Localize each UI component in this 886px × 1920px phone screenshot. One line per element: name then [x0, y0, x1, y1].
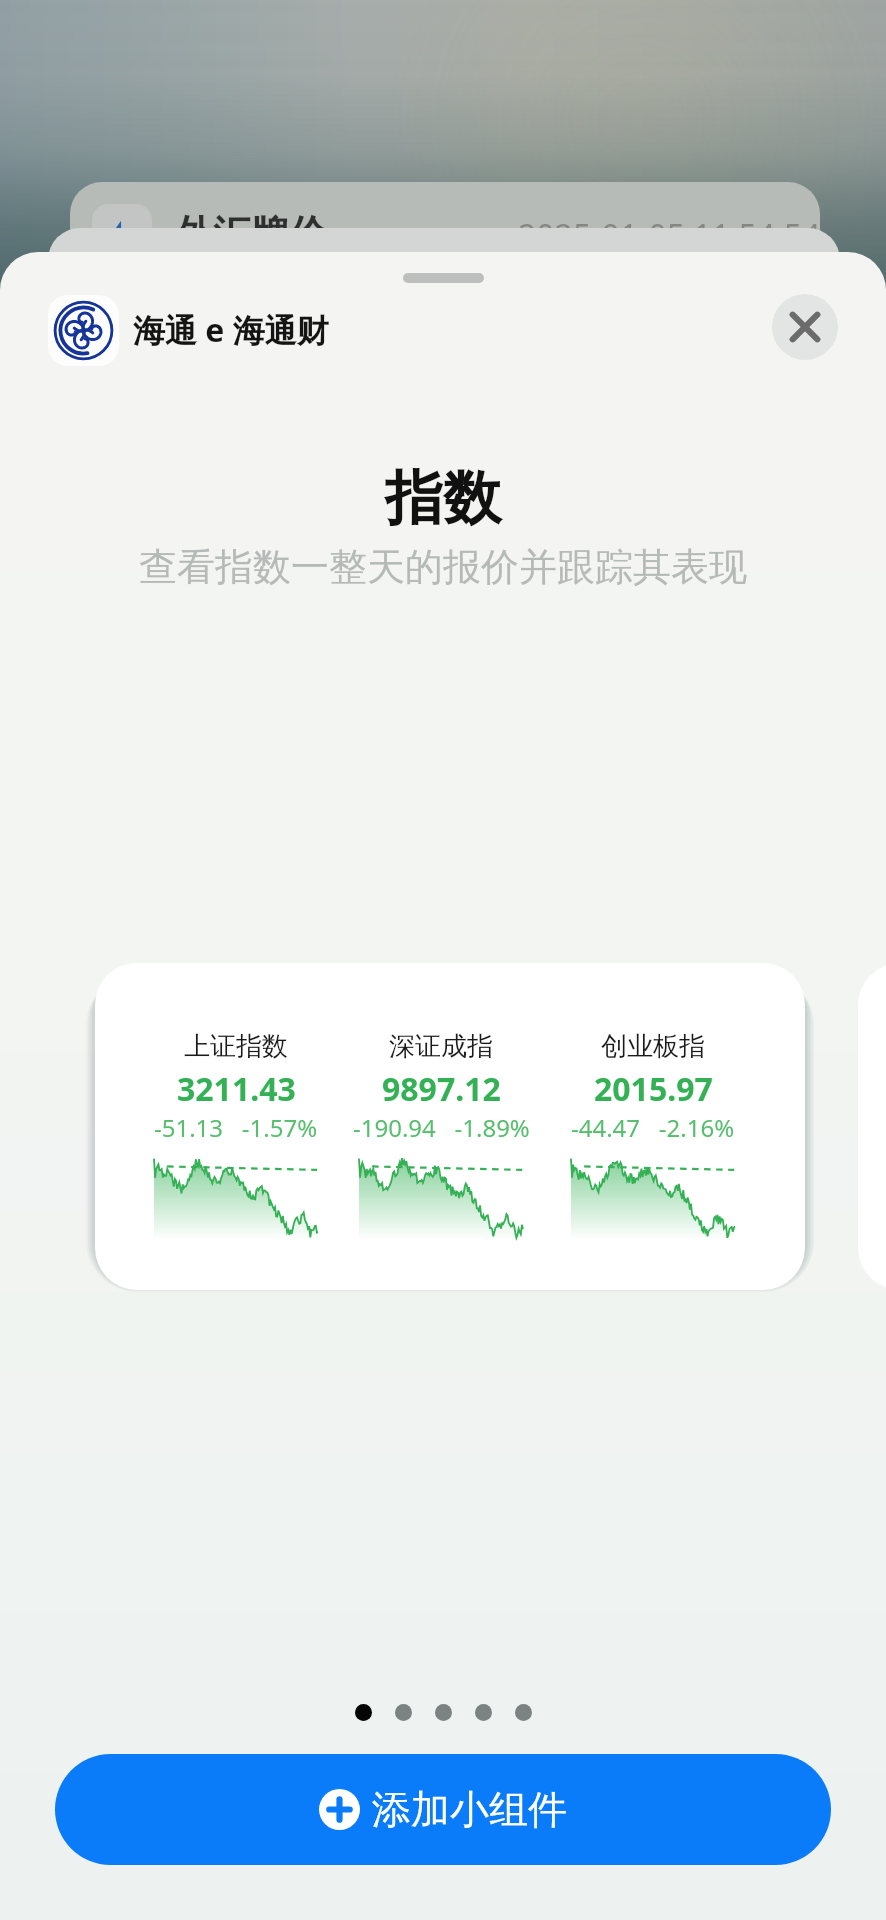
- button[interactable]: 第 4 页: [475, 1704, 492, 1721]
- staticText: 9897.12: [382, 1067, 501, 1111]
- staticText: -190.94 -1.89%: [353, 1111, 530, 1144]
- button[interactable]: 上证指数: [95, 963, 805, 1290]
- staticText: 创业板指: [601, 1030, 705, 1063]
- staticText: 海通 e 海通财: [133, 308, 329, 352]
- staticText: -51.13 -1.57%: [154, 1111, 318, 1144]
- button[interactable]: 第 1 页: [355, 1704, 372, 1721]
- staticText: 指数: [0, 462, 886, 535]
- staticText: 2015.97: [594, 1067, 713, 1111]
- staticText: 3211.43: [177, 1067, 296, 1111]
- button[interactable]: 添加小组件: [55, 1754, 831, 1865]
- button[interactable]: 第 2 页: [395, 1704, 412, 1721]
- staticText: 查看指数一整天的报价并跟踪其表现: [0, 543, 886, 591]
- staticText: -44.47 -2.16%: [571, 1111, 735, 1144]
- staticText: 深证成指: [389, 1030, 493, 1063]
- button[interactable]: 关闭: [772, 294, 838, 360]
- staticText: 外汇牌价: [175, 210, 327, 258]
- button[interactable]: 第 3 页: [435, 1704, 452, 1721]
- staticText: 2025-01-05 11:54:54: [518, 214, 820, 258]
- staticText: 添加小组件: [372, 1785, 567, 1834]
- button[interactable]: 第 5 页: [515, 1704, 532, 1721]
- staticText: 上证指数: [184, 1030, 288, 1063]
